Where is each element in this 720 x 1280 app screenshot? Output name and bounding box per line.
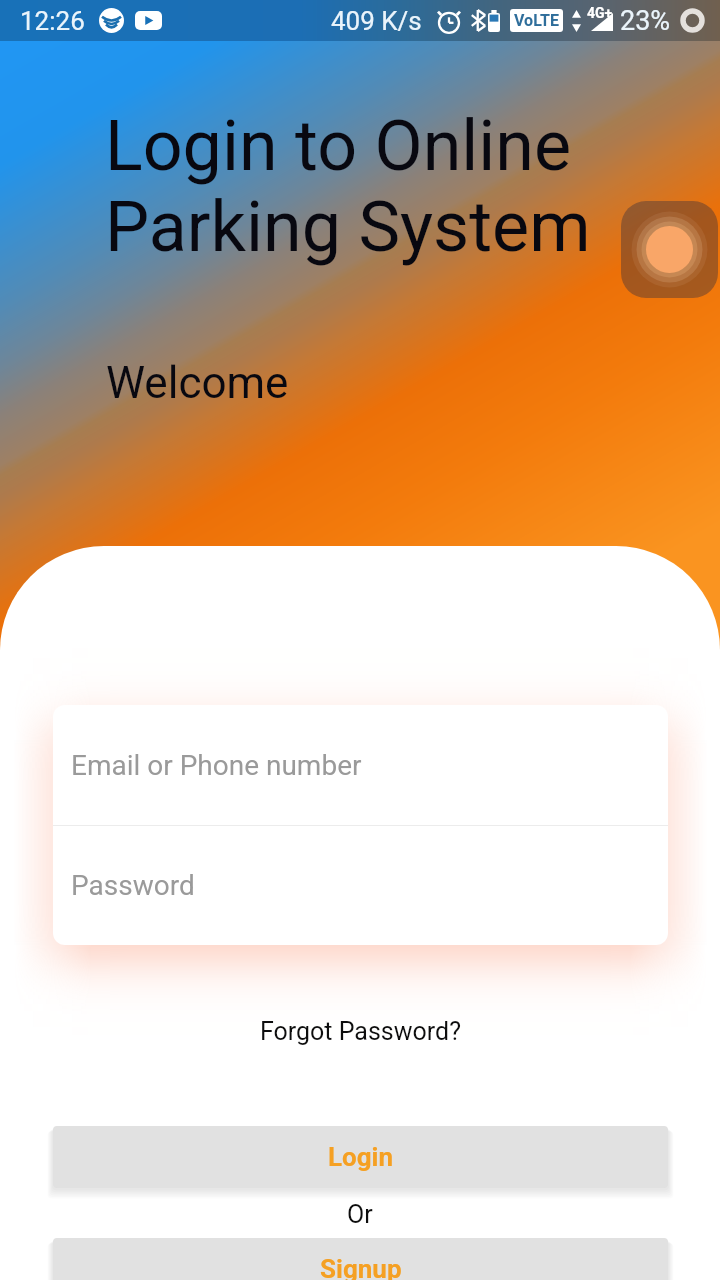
staticText: Welcome <box>106 357 289 409</box>
button[interactable]: Email or Phone number <box>53 705 668 825</box>
staticText: Login to Online Parking System <box>105 105 591 268</box>
button[interactable]: Signup <box>53 1238 668 1280</box>
staticText: 4G+ <box>587 5 613 21</box>
staticText: Email or Phone number <box>71 749 362 782</box>
staticText: Or <box>347 1200 373 1229</box>
staticText: Password <box>71 869 195 902</box>
button[interactable]: Password <box>53 826 668 945</box>
staticText: 12:26 <box>20 6 85 36</box>
staticText: 409 K/s <box>331 6 422 36</box>
button[interactable]: Profile <box>621 201 718 298</box>
staticText: VoLTE <box>514 11 559 30</box>
staticText: 23% <box>620 5 671 37</box>
staticText: Login <box>328 1142 394 1172</box>
button[interactable]: Login <box>53 1126 668 1188</box>
button[interactable]: Forgot Password? <box>250 1011 471 1052</box>
staticText: Signup <box>320 1254 402 1280</box>
